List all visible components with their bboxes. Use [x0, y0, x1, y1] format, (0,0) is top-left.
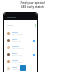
staticText: Find your special [20, 1, 45, 5]
button[interactable] [4, 58, 37, 65]
button[interactable] [4, 65, 37, 72]
button[interactable] [4, 37, 37, 44]
button[interactable]: Chat [20, 65, 26, 71]
staticText: LBS curly match [21, 5, 44, 9]
button[interactable] [4, 30, 37, 37]
button[interactable] [4, 51, 37, 58]
button[interactable] [4, 44, 37, 51]
